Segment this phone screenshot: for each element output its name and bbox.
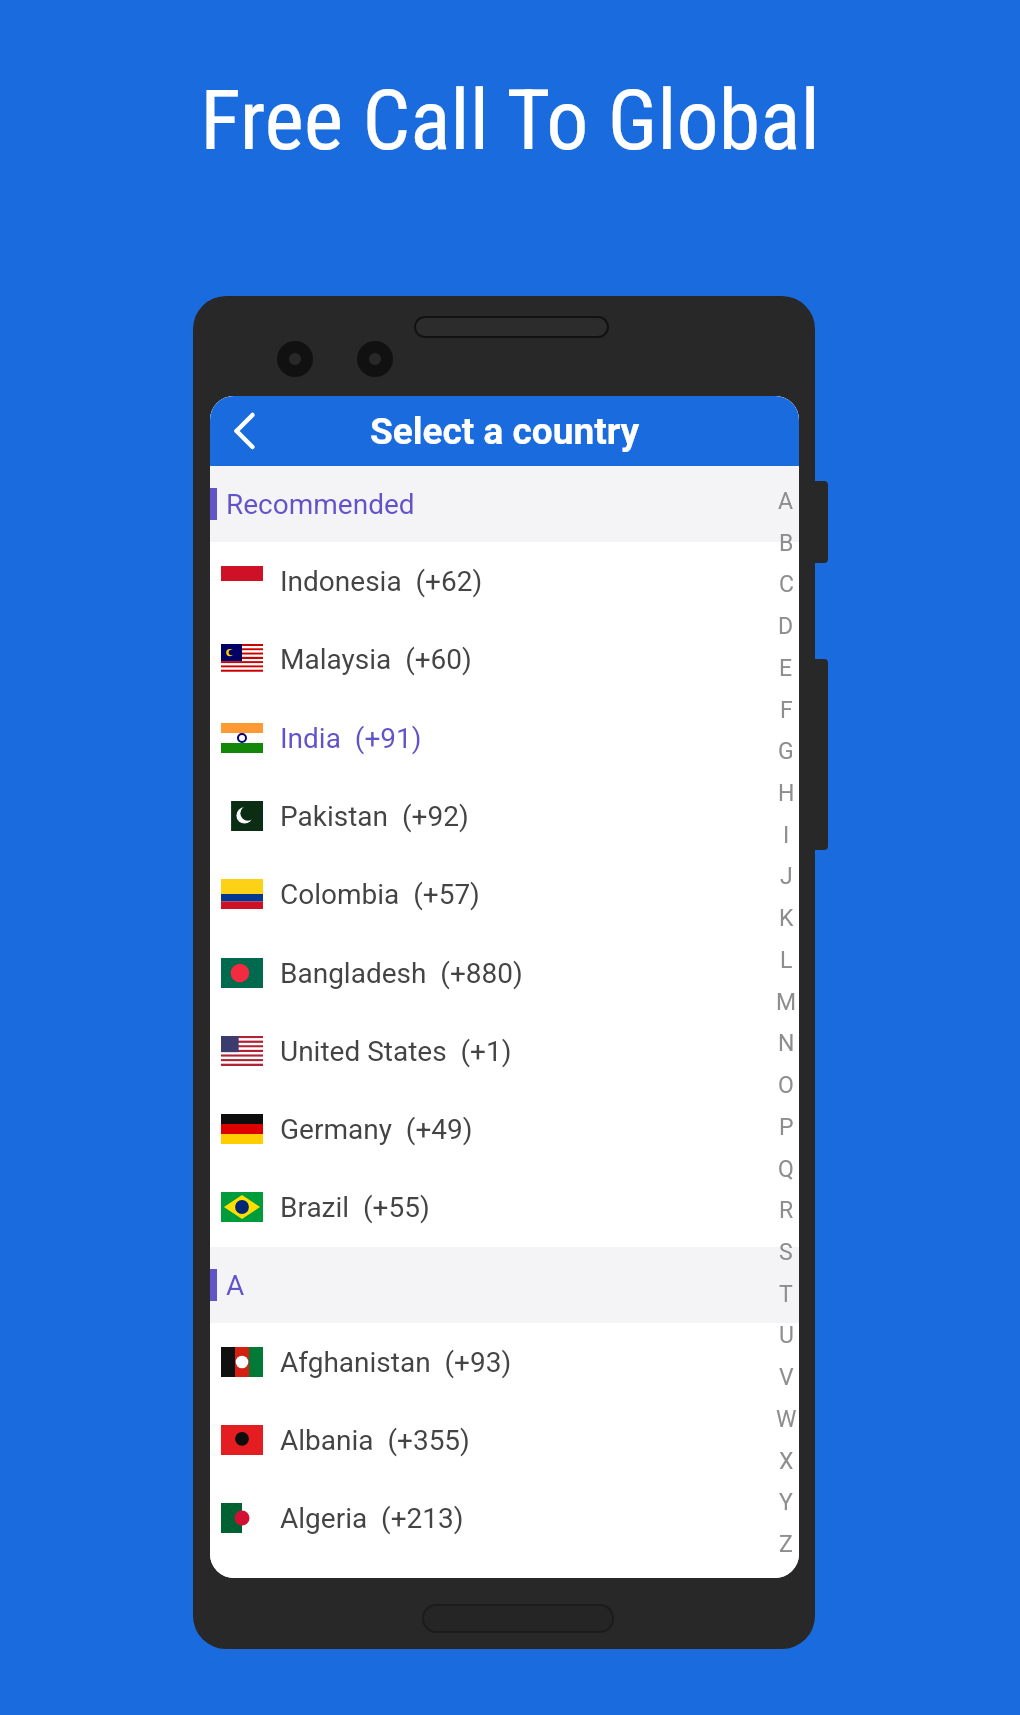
staticText: P	[779, 1114, 794, 1141]
button[interactable]: Colombia (+57)	[210, 855, 799, 933]
staticText: L	[780, 947, 793, 974]
staticText: N	[778, 1030, 795, 1057]
staticText: J	[780, 863, 793, 890]
staticText: V	[779, 1364, 794, 1391]
staticText: O	[778, 1072, 794, 1099]
staticText: I	[783, 822, 790, 849]
staticText: Q	[778, 1156, 794, 1183]
staticText: E	[779, 655, 793, 682]
button[interactable]: Afghanistan (+93)	[210, 1323, 799, 1401]
button[interactable]: Bangladesh (+880)	[210, 934, 799, 1012]
staticText: W	[776, 1406, 797, 1433]
staticText: R	[779, 1197, 794, 1224]
staticText: U	[779, 1322, 794, 1349]
staticText: United States (+1)	[280, 1035, 512, 1068]
button[interactable]: United States (+1)	[210, 1012, 799, 1090]
button[interactable]: India (+91)	[210, 699, 799, 777]
staticText: Y	[779, 1489, 793, 1516]
staticText: H	[778, 780, 795, 807]
button[interactable]: Back	[210, 396, 284, 466]
staticText: T	[779, 1281, 793, 1308]
staticText: Malaysia (+60)	[280, 643, 472, 676]
button[interactable]: Pakistan (+92)	[210, 777, 799, 855]
staticText: Select a country	[370, 410, 640, 453]
staticText: India (+91)	[280, 722, 422, 755]
staticText: Bangladesh (+880)	[280, 957, 523, 990]
staticText: B	[779, 530, 794, 557]
staticText: Indonesia (+62)	[280, 565, 483, 598]
button[interactable]: Germany (+49)	[210, 1090, 799, 1168]
staticText: Z	[779, 1531, 793, 1558]
staticText: M	[776, 989, 797, 1016]
staticText: Algeria (+213)	[280, 1502, 464, 1535]
staticText: X	[779, 1448, 794, 1475]
button[interactable]: Indonesia (+62)	[210, 542, 799, 620]
button[interactable]: Brazil (+55)	[210, 1168, 799, 1246]
staticText: C	[779, 571, 794, 598]
staticText: Brazil (+55)	[280, 1191, 430, 1224]
staticText: Free Call To Global	[200, 71, 820, 169]
button[interactable]: Malaysia (+60)	[210, 620, 799, 698]
staticText: Albania (+355)	[280, 1424, 470, 1457]
staticText: Germany (+49)	[280, 1113, 473, 1146]
staticText: G	[778, 738, 794, 765]
staticText: Pakistan (+92)	[280, 800, 469, 833]
staticText: F	[780, 697, 793, 724]
staticText: A	[226, 1269, 245, 1302]
button[interactable]: Algeria (+213)	[210, 1479, 799, 1557]
staticText: S	[779, 1239, 793, 1266]
button[interactable]: Alphabet index	[773, 396, 799, 1578]
button[interactable]: Albania (+355)	[210, 1401, 799, 1479]
staticText: D	[778, 613, 794, 640]
staticText: K	[779, 905, 794, 932]
staticText: Afghanistan (+93)	[280, 1346, 512, 1379]
staticText: Recommended	[226, 488, 415, 521]
staticText: Colombia (+57)	[280, 878, 480, 911]
staticText: A	[778, 488, 794, 515]
